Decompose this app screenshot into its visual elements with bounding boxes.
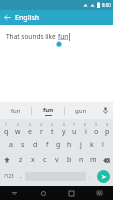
staticText: e: [28, 127, 32, 137]
button[interactable]: h: [64, 138, 75, 152]
button[interactable]: b: [63, 153, 75, 167]
staticText: ,: [20, 172, 22, 180]
button[interactable]: Recents: [57, 186, 85, 200]
staticText: p: [105, 127, 110, 137]
button[interactable]: ?123: [1, 168, 17, 184]
button[interactable]: 0: [102, 121, 113, 137]
button[interactable]: Voice input: [97, 102, 113, 119]
staticText: English: [15, 13, 40, 23]
staticText: g: [56, 140, 61, 150]
staticText: k: [90, 140, 94, 150]
staticText: 0: [106, 122, 109, 127]
button[interactable]: x: [27, 153, 39, 167]
button[interactable]: 3: [24, 121, 36, 137]
staticText: 8: [84, 122, 87, 127]
staticText: 5: [51, 122, 54, 127]
staticText: s: [21, 140, 25, 150]
staticText: fun: [58, 32, 69, 41]
button[interactable]: Back: [0, 10, 15, 25]
staticText: ?123: [4, 173, 14, 179]
staticText: 9: [95, 122, 98, 127]
staticText: n: [79, 155, 84, 165]
staticText: i: [85, 127, 87, 137]
staticText: 6: [63, 122, 66, 127]
staticText: That sounds like: [6, 32, 58, 41]
button[interactable]: a: [5, 138, 17, 152]
button[interactable]: g: [53, 138, 64, 152]
button[interactable]: 6: [58, 121, 69, 137]
button[interactable]: Back: [0, 186, 29, 200]
button[interactable]: d: [29, 138, 41, 152]
button[interactable]: Send: [94, 168, 112, 184]
staticText: h: [67, 140, 72, 150]
button[interactable]: s: [17, 138, 29, 152]
staticText: r: [40, 127, 43, 137]
button[interactable]: 1: [0, 121, 12, 137]
button[interactable]: fun: [32, 102, 64, 119]
button[interactable]: Switch keyboard: [85, 186, 113, 200]
button[interactable]: 7: [69, 121, 80, 137]
staticText: d: [33, 140, 38, 150]
staticText: 2: [17, 122, 20, 127]
button[interactable]: gun: [65, 102, 97, 119]
staticText: j: [80, 140, 82, 150]
staticText: 1: [5, 122, 8, 127]
staticText: fun: [43, 106, 54, 114]
staticText: w: [15, 127, 21, 137]
button[interactable]: 2: [12, 121, 24, 137]
button[interactable]: .: [86, 168, 94, 184]
staticText: 7: [73, 122, 76, 127]
staticText: x: [31, 155, 35, 165]
staticText: q: [4, 127, 9, 137]
button[interactable]: n: [75, 153, 87, 167]
button[interactable]: 8: [80, 121, 91, 137]
button[interactable]: ,: [17, 168, 25, 184]
button[interactable]: Shift: [0, 153, 14, 167]
button[interactable]: j: [75, 138, 86, 152]
staticText: a: [9, 140, 13, 150]
button[interactable]: f: [41, 138, 53, 152]
button[interactable]: fun: [0, 102, 31, 119]
button[interactable]: m: [87, 153, 99, 167]
button[interactable]: 4: [36, 121, 47, 137]
staticText: .: [89, 172, 91, 180]
staticText: u: [72, 127, 77, 137]
button[interactable]: 9: [91, 121, 102, 137]
staticText: t: [51, 127, 54, 137]
button[interactable]: c: [39, 153, 51, 167]
staticText: o: [94, 127, 99, 137]
button[interactable]: v: [51, 153, 63, 167]
staticText: m: [90, 155, 97, 165]
button[interactable]: Home: [29, 186, 57, 200]
staticText: v: [55, 155, 59, 165]
button[interactable]: l: [97, 138, 108, 152]
button[interactable]: k: [86, 138, 97, 152]
staticText: l: [102, 140, 104, 150]
staticText: gun: [75, 107, 87, 115]
button[interactable]: 5: [47, 121, 58, 137]
button[interactable]: Backspace: [99, 153, 113, 167]
staticText: 8:00: [102, 2, 111, 8]
staticText: 3: [29, 122, 32, 127]
staticText: c: [43, 155, 47, 165]
staticText: f: [46, 140, 49, 150]
button[interactable]: z: [14, 153, 27, 167]
staticText: z: [19, 155, 23, 165]
staticText: fun: [11, 107, 21, 115]
staticText: b: [67, 155, 72, 165]
staticText: 4: [40, 122, 43, 127]
staticText: y: [62, 127, 66, 137]
